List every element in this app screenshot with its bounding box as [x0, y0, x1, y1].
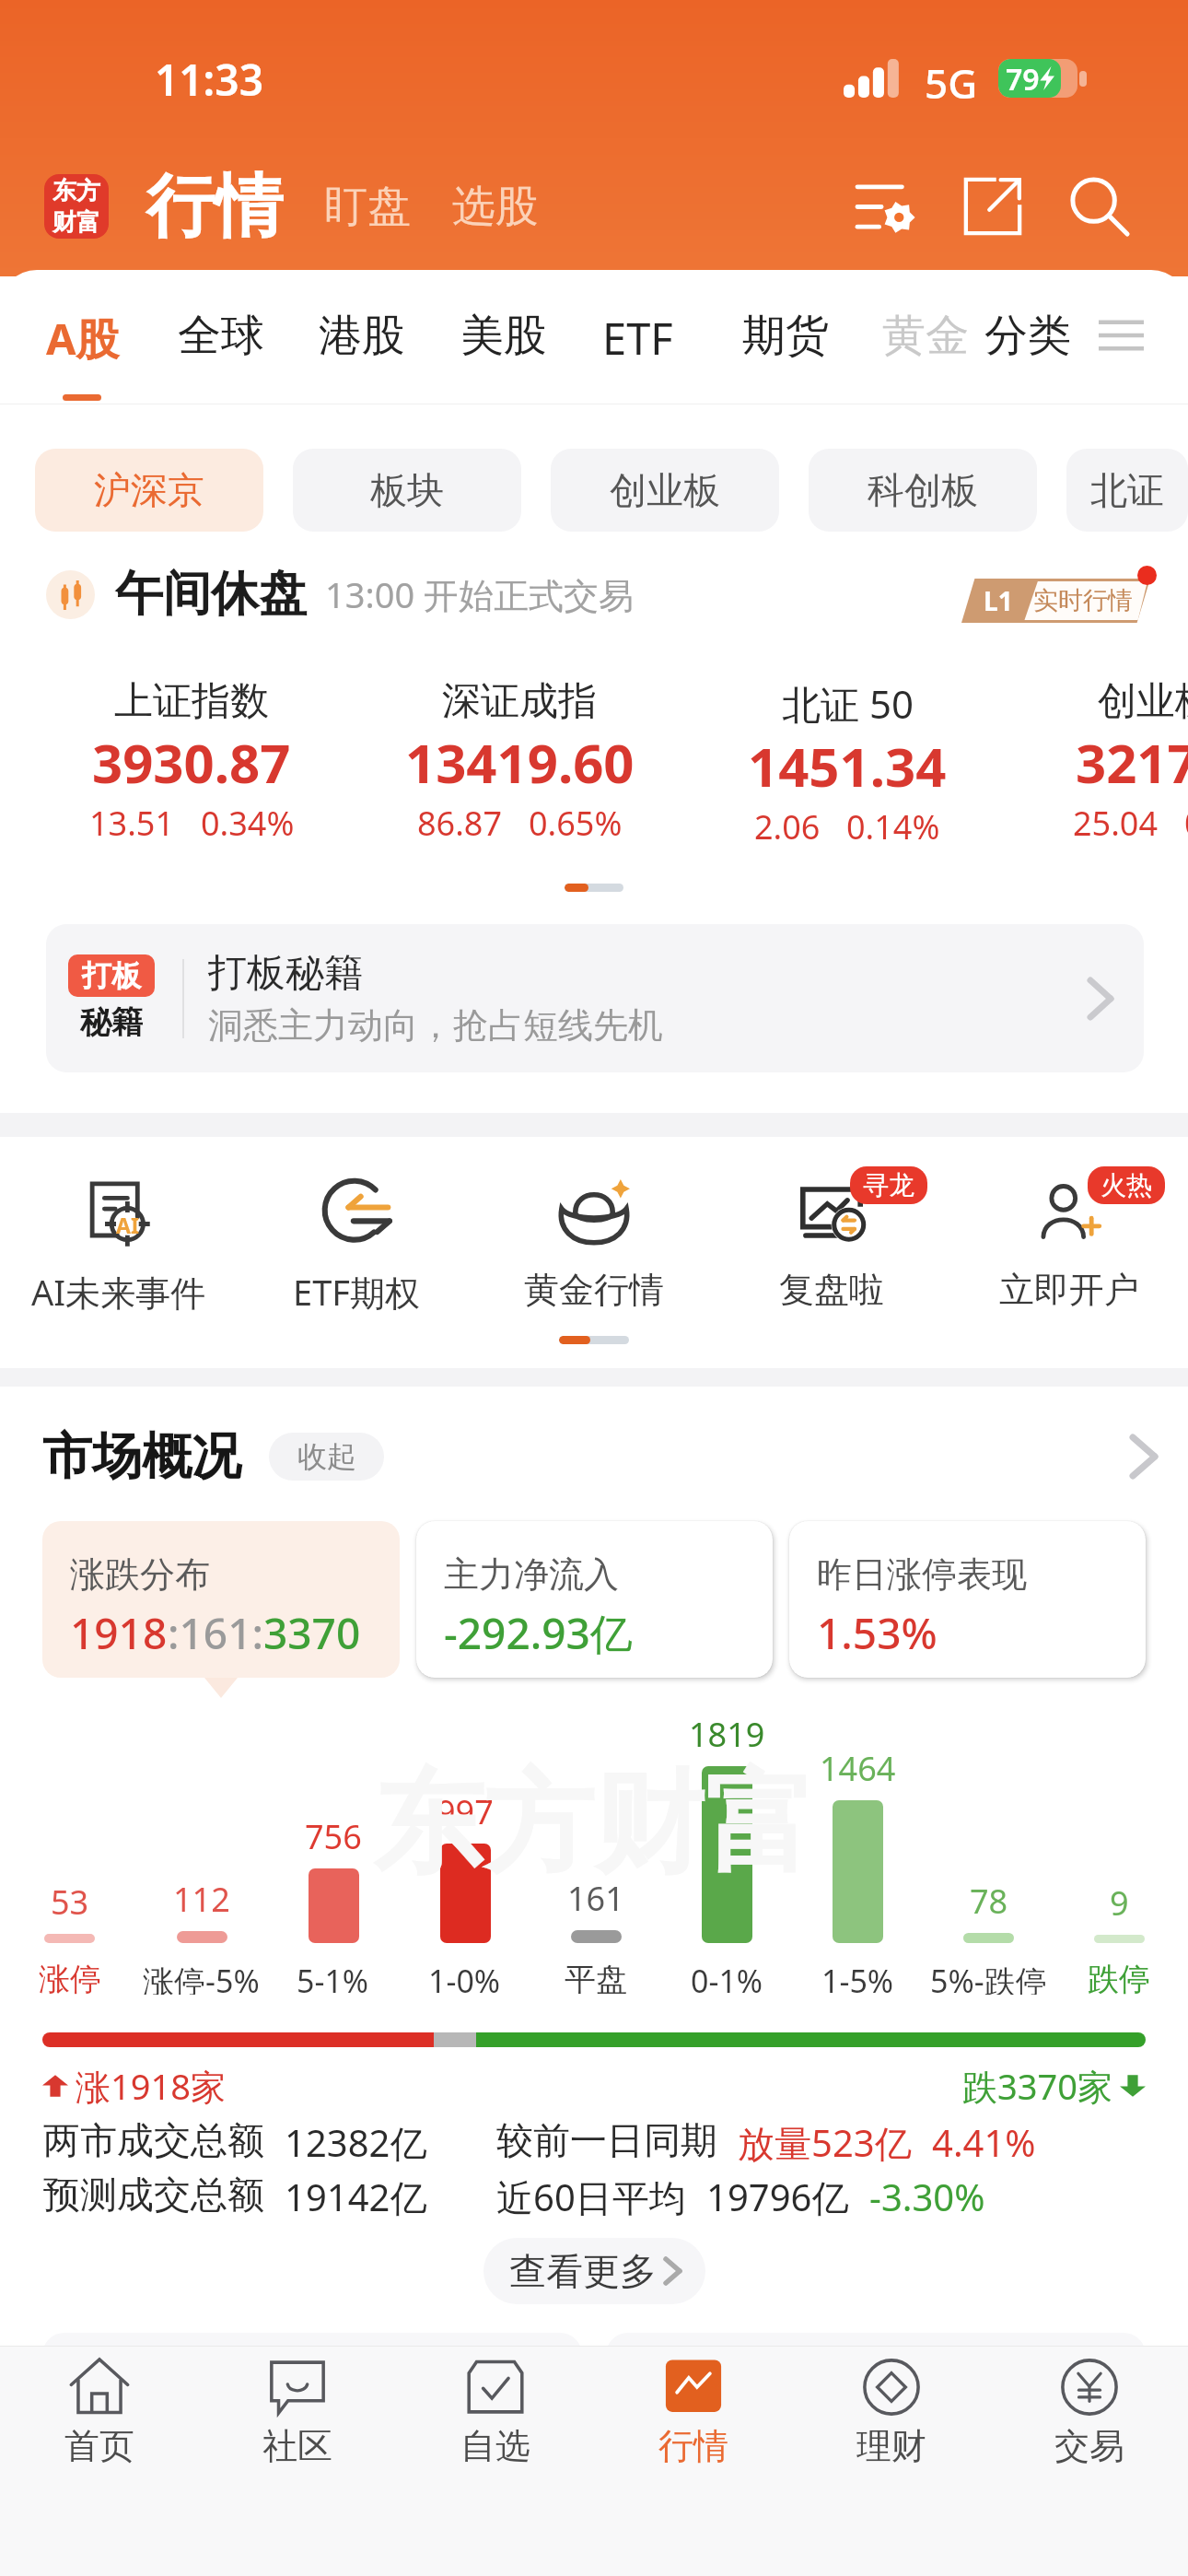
- staticText: 选股: [452, 180, 539, 234]
- staticText: 预测成交总额: [43, 2172, 264, 2218]
- button[interactable]: 全球: [178, 309, 264, 363]
- staticText: 近60日平均: [496, 2172, 686, 2222]
- button[interactable]: ETF: [602, 309, 673, 368]
- staticText: 53: [51, 1879, 89, 1925]
- staticText: 涨1918家: [76, 2062, 226, 2110]
- button[interactable]: 北证: [1066, 449, 1188, 532]
- button[interactable]: 自选: [396, 2347, 594, 2468]
- staticText: 5%-跌停: [930, 1960, 1047, 1995]
- button[interactable]: 昨日涨停表现: [789, 1521, 1146, 1678]
- staticText: 东方: [52, 176, 100, 206]
- staticText: 深证成指: [442, 677, 597, 726]
- button[interactable]: 分类: [984, 309, 1071, 363]
- staticText: 北证: [1090, 467, 1164, 513]
- staticText: 昨日涨停表现: [817, 1552, 1027, 1597]
- button[interactable]: AI: [0, 1174, 238, 1316]
- button[interactable]: 火热: [950, 1174, 1188, 1312]
- staticText: 13:00 开始正式交易: [325, 570, 635, 618]
- staticText: 北证 50: [782, 677, 914, 730]
- staticText: 黄金: [882, 309, 969, 363]
- staticText: 寻龙: [863, 1169, 914, 1201]
- staticText: 1451.34: [748, 730, 947, 802]
- staticText: 涨停-5%: [143, 1960, 260, 1995]
- staticText: 12382亿: [285, 2117, 427, 2168]
- staticText: ETF: [602, 309, 673, 368]
- staticText: 主力净流入: [444, 1552, 619, 1597]
- button[interactable]: 主力净流入: [416, 1521, 773, 1678]
- staticText: 黄金行情: [524, 1268, 664, 1312]
- staticText: 火热: [1101, 1169, 1152, 1201]
- staticText: -3.30%: [869, 2172, 985, 2221]
- staticText: 实时行情: [1033, 585, 1133, 616]
- button[interactable]: 打板: [46, 924, 1144, 1072]
- staticText: 161: [567, 1876, 624, 1921]
- staticText: 涨跌分布: [70, 1552, 210, 1597]
- staticText: 板块: [370, 467, 444, 513]
- button[interactable]: 行情: [594, 2347, 792, 2468]
- staticText: 上证指数: [114, 677, 269, 726]
- staticText: AI未来事件: [31, 1268, 206, 1316]
- staticText: 1918: [70, 1604, 168, 1662]
- staticText: -292.93亿: [444, 1604, 633, 1662]
- button[interactable]: 自选设置: [846, 167, 926, 246]
- staticText: 沪深京: [94, 467, 204, 513]
- staticText: 放量523亿: [738, 2117, 912, 2168]
- button[interactable]: 收起: [269, 1433, 384, 1481]
- staticText: 查看更多: [509, 2248, 657, 2294]
- button[interactable]: 板块: [293, 449, 521, 532]
- staticText: 科创板: [868, 467, 978, 513]
- button[interactable]: 沪深京: [35, 449, 263, 532]
- staticText: 跌停: [1088, 1960, 1150, 1995]
- staticText: 11:33: [155, 51, 263, 109]
- staticText: 午间休盘: [115, 564, 307, 625]
- staticText: 78: [970, 1879, 1008, 1924]
- button[interactable]: 搜索: [1060, 167, 1139, 246]
- button[interactable]: 涨跌分布: [42, 1521, 400, 1678]
- staticText: 收起: [297, 1438, 356, 1475]
- staticText: 2.06: [754, 804, 821, 849]
- staticText: A股: [46, 309, 120, 368]
- staticText: 3370: [263, 1604, 361, 1662]
- staticText: 5-1%: [297, 1960, 369, 1995]
- button[interactable]: 更多分类: [1098, 309, 1144, 362]
- staticText: 1-0%: [428, 1960, 501, 1995]
- staticText: 社区: [262, 2424, 332, 2468]
- button[interactable]: 美股: [460, 309, 547, 363]
- staticText: 19142亿: [285, 2172, 427, 2222]
- button[interactable]: 科创板: [809, 449, 1037, 532]
- staticText: 19796亿: [706, 2172, 849, 2222]
- staticText: 较前一日同期: [496, 2117, 717, 2163]
- staticText: 79: [1006, 59, 1040, 98]
- button[interactable]: 选股: [452, 167, 539, 247]
- button[interactable]: 社区: [198, 2347, 396, 2468]
- staticText: 市场概况: [42, 1425, 241, 1488]
- staticText: 112: [173, 1877, 230, 1922]
- staticText: 复盘啦: [779, 1268, 884, 1312]
- button[interactable]: 盯盘: [324, 167, 411, 247]
- button[interactable]: ETF期权: [238, 1174, 475, 1316]
- staticText: 9: [1110, 1880, 1129, 1926]
- button[interactable]: 寻龙: [713, 1174, 950, 1312]
- staticText: 盯盘: [324, 180, 411, 234]
- staticText: 4.41%: [932, 2117, 1036, 2167]
- staticText: 创业板指: [1098, 677, 1188, 726]
- button[interactable]: 港股: [319, 309, 405, 363]
- staticText: 立即开户: [999, 1268, 1139, 1312]
- staticText: 美股: [460, 309, 547, 363]
- staticText: L1: [984, 583, 1013, 618]
- button[interactable]: 期货: [742, 309, 829, 363]
- button[interactable]: 黄金: [882, 309, 969, 363]
- staticText: 13419.60: [405, 726, 635, 799]
- button[interactable]: 首页: [0, 2347, 198, 2468]
- button[interactable]: A股: [46, 309, 120, 368]
- button[interactable]: 理财: [792, 2347, 990, 2468]
- staticText: 0-1%: [691, 1960, 763, 1995]
- staticText: 全球: [178, 309, 264, 363]
- staticText: 两市成交总额: [43, 2117, 264, 2163]
- staticText: 1.53%: [817, 1604, 938, 1662]
- button[interactable]: 查看更多: [483, 2238, 705, 2304]
- button[interactable]: 分享: [953, 167, 1032, 246]
- button[interactable]: 创业板: [551, 449, 779, 532]
- button[interactable]: 交易: [990, 2347, 1188, 2468]
- button[interactable]: 黄金行情: [475, 1174, 713, 1312]
